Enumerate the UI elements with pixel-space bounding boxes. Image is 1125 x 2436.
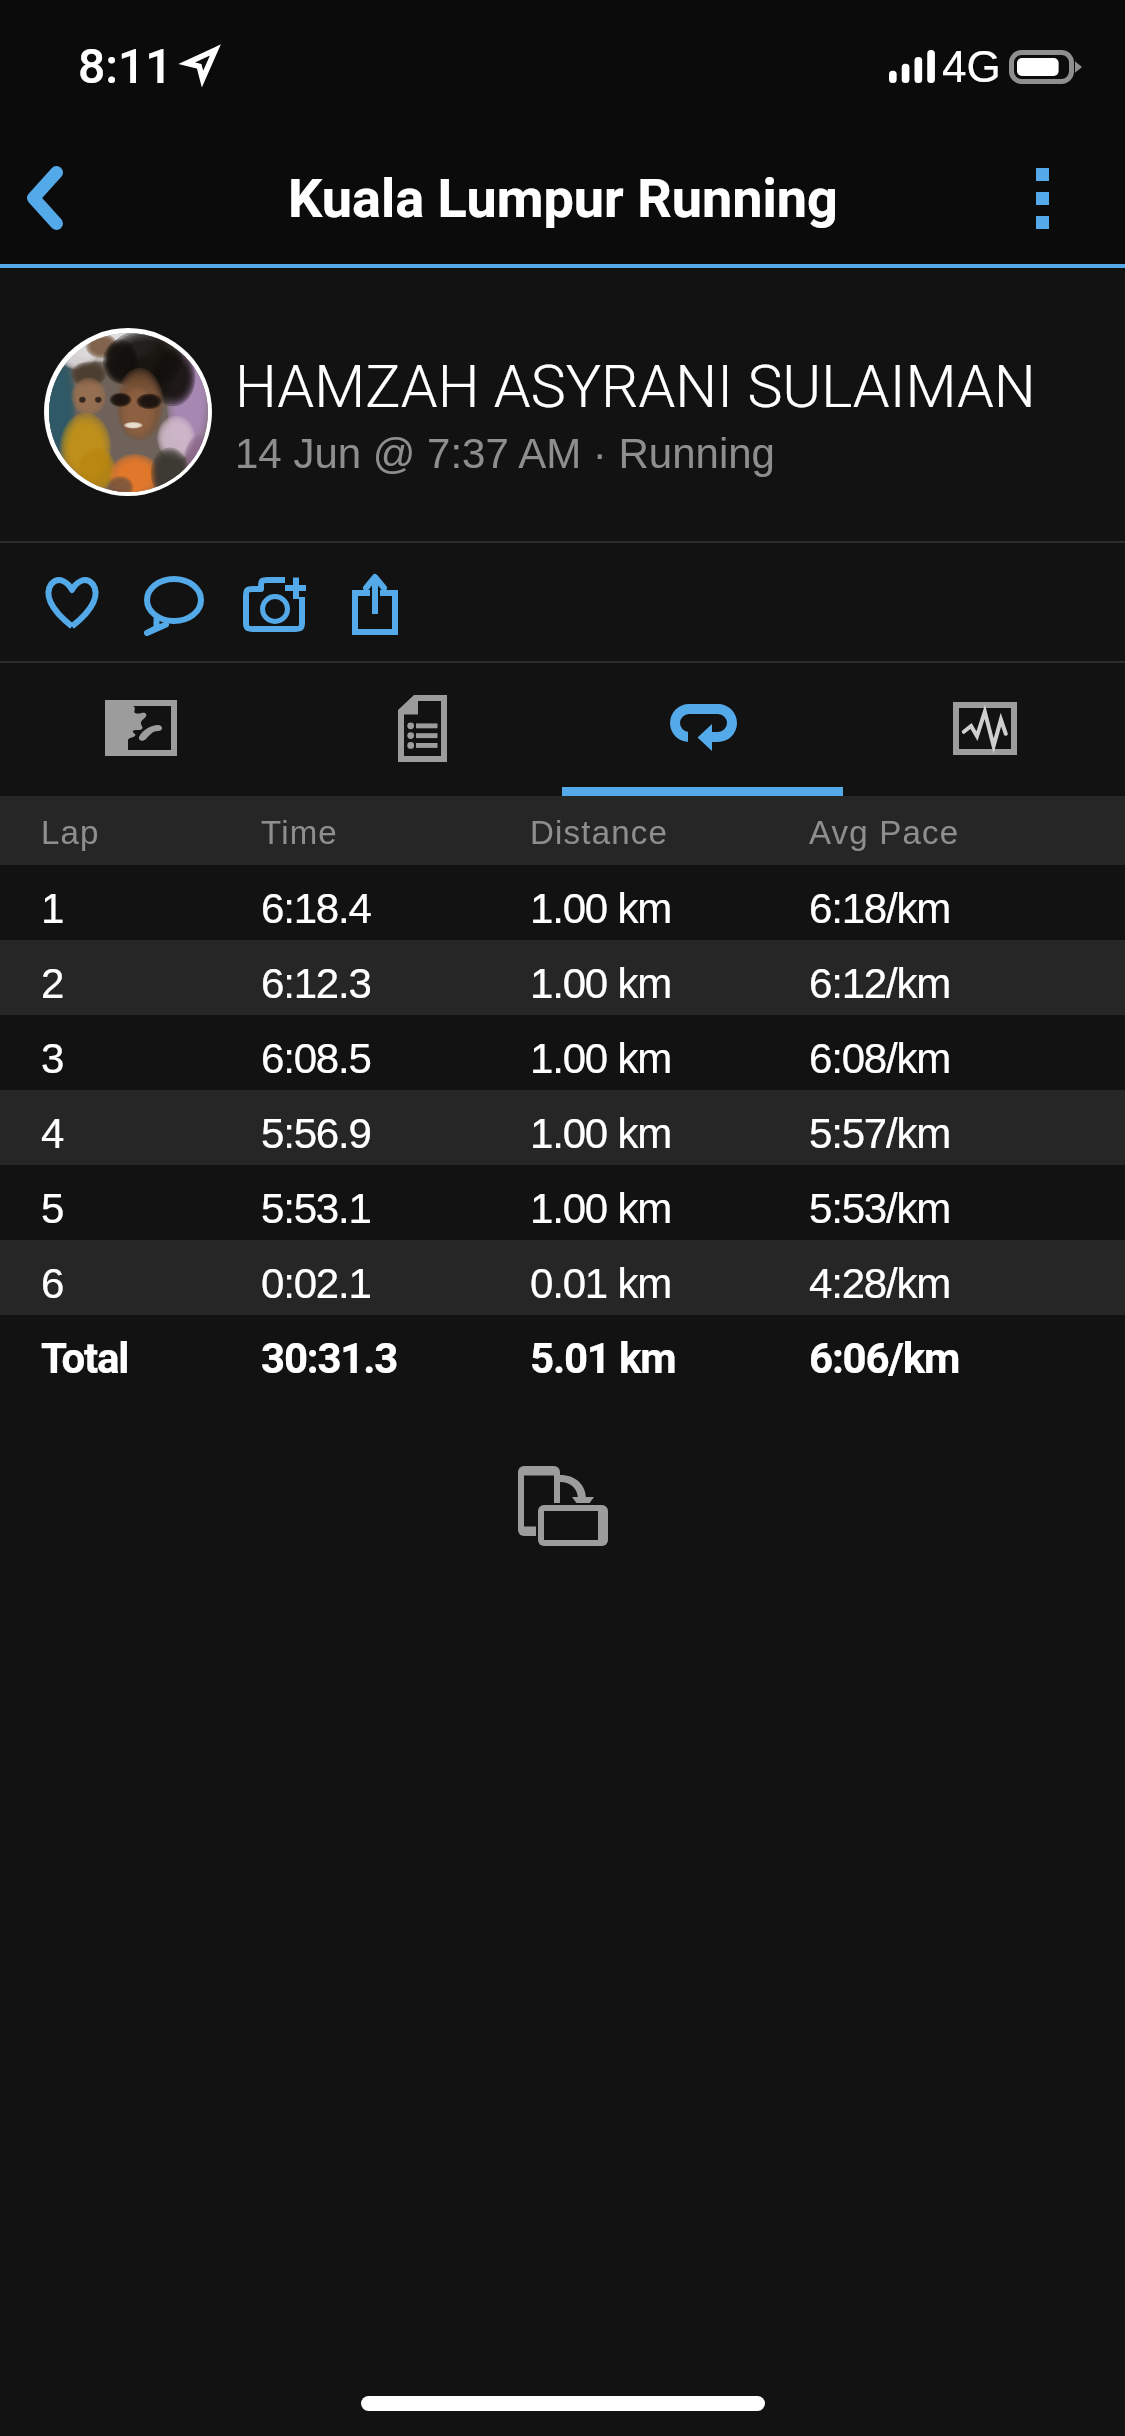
button[interactable]: Like: [25, 543, 119, 661]
staticText: HAMZAH ASYRANI SULAIMAN: [235, 352, 1036, 421]
staticText: 0:02.1: [261, 1260, 371, 1307]
button[interactable]: More options: [1015, 132, 1125, 264]
staticText: Lap: [41, 814, 100, 851]
button[interactable]: 5: [0, 1165, 1125, 1240]
button[interactable]: Total: [0, 1315, 1125, 1390]
button[interactable]: Add photo: [227, 543, 321, 661]
staticText: 6:06/km: [809, 1334, 960, 1383]
button[interactable]: Comment: [127, 543, 221, 661]
staticText: 5:56.9: [261, 1110, 371, 1157]
staticText: 1.00 km: [530, 885, 671, 932]
button[interactable]: 4: [0, 1090, 1125, 1165]
button[interactable]: Details: [282, 662, 563, 796]
staticText: 4:28/km: [809, 1260, 950, 1307]
button[interactable]: Lap: [0, 796, 1125, 865]
staticText: 5: [41, 1185, 64, 1232]
button[interactable]: Laps: [563, 662, 844, 796]
button[interactable]: 2: [0, 940, 1125, 1015]
staticText: 1.00 km: [530, 1110, 671, 1157]
staticText: 6: [41, 1260, 64, 1307]
staticText: 1.00 km: [530, 1185, 671, 1232]
staticText: Total: [41, 1334, 129, 1383]
button[interactable]: 6: [0, 1240, 1125, 1315]
staticText: 6:12/km: [809, 960, 950, 1007]
staticText: 0.01 km: [530, 1260, 671, 1307]
button[interactable]: Share: [328, 543, 422, 661]
button[interactable]: Graphs: [844, 662, 1125, 796]
staticText: 6:08.5: [261, 1035, 371, 1082]
staticText: 8:11: [78, 38, 173, 94]
staticText: 6:12.3: [261, 960, 371, 1007]
staticText: 1.00 km: [530, 960, 671, 1007]
button[interactable]: 1: [0, 865, 1125, 940]
staticText: Avg Pace: [809, 814, 960, 851]
staticText: 5.01 km: [530, 1334, 676, 1383]
staticText: 1.00 km: [530, 1035, 671, 1082]
button[interactable]: Map: [0, 662, 282, 796]
staticText: 6:18.4: [261, 885, 371, 932]
staticText: 30:31.3: [261, 1334, 398, 1383]
staticText: 3: [41, 1035, 64, 1082]
staticText: 5:53.1: [261, 1185, 371, 1232]
staticText: 5:53/km: [809, 1185, 950, 1232]
button[interactable]: Back: [0, 132, 100, 264]
staticText: 2: [41, 960, 64, 1007]
button[interactable]: HAMZAH ASYRANI SULAIMAN: [0, 268, 1125, 542]
staticText: 6:18/km: [809, 885, 950, 932]
staticText: 4: [41, 1110, 64, 1157]
staticText: 6:08/km: [809, 1035, 950, 1082]
staticText: 5:57/km: [809, 1110, 950, 1157]
staticText: Kuala Lumpur Running: [288, 167, 838, 230]
staticText: Distance: [530, 814, 668, 851]
button[interactable]: 3: [0, 1015, 1125, 1090]
staticText: Time: [261, 814, 338, 851]
staticText: 1: [41, 885, 64, 932]
staticText: 4G: [942, 42, 1001, 91]
staticText: 14 Jun @ 7:37 AM · Running: [235, 430, 775, 477]
